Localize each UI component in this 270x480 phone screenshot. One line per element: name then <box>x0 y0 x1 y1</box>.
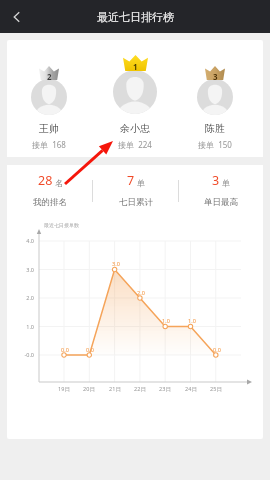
staticText: 24日 <box>179 385 203 393</box>
staticText: 七日累计 <box>119 197 153 208</box>
staticText: 最近七日接单数 <box>44 222 79 228</box>
staticText: 7 <box>127 172 135 189</box>
button[interactable]: 3 <box>178 165 263 220</box>
staticText: 0.0 <box>55 346 75 353</box>
button[interactable]: 1 <box>95 46 175 156</box>
staticText: 接单 224 <box>95 139 175 150</box>
staticText: 22日 <box>128 385 152 393</box>
button[interactable]: 2 <box>9 46 89 156</box>
staticText: 最近七日排行榜 <box>97 10 174 24</box>
button[interactable]: 28 <box>7 165 93 220</box>
staticText: 28 <box>38 172 53 189</box>
staticText: 21日 <box>103 385 127 393</box>
staticText: 1.0 <box>182 317 202 324</box>
staticText: 单 <box>222 178 230 188</box>
staticText: 3.0 <box>14 266 34 273</box>
staticText: -0.0 <box>14 351 34 358</box>
staticText: 我的排名 <box>33 197 67 208</box>
staticText: 19日 <box>52 385 76 393</box>
staticText: 2 <box>47 71 52 82</box>
staticText: 接单 168 <box>9 139 89 150</box>
button[interactable]: Back <box>0 0 33 33</box>
staticText: 3 <box>213 71 218 82</box>
button[interactable]: 3 <box>175 46 255 156</box>
staticText: 4.0 <box>14 237 34 244</box>
staticText: 1.0 <box>156 317 176 324</box>
staticText: 0.0 <box>80 346 100 353</box>
staticText: 王帅 <box>9 122 89 135</box>
staticText: 2.0 <box>131 289 151 296</box>
staticText: 3 <box>212 172 220 189</box>
staticText: 0.0 <box>207 346 227 353</box>
staticText: 3.0 <box>106 260 126 267</box>
staticText: 23日 <box>153 385 177 393</box>
staticText: 1 <box>133 61 138 72</box>
staticText: 2.0 <box>14 294 34 301</box>
staticText: 名 <box>55 178 63 188</box>
staticText: 接单 150 <box>175 139 255 150</box>
staticText: 余小忠 <box>95 122 175 135</box>
staticText: 1.0 <box>14 323 34 330</box>
staticText: 20日 <box>77 385 101 393</box>
button[interactable]: 7 <box>93 165 178 220</box>
staticText: 25日 <box>204 385 228 393</box>
staticText: 陈胜 <box>175 122 255 135</box>
staticText: 单 <box>137 178 145 188</box>
staticText: 单日最高 <box>204 197 238 208</box>
